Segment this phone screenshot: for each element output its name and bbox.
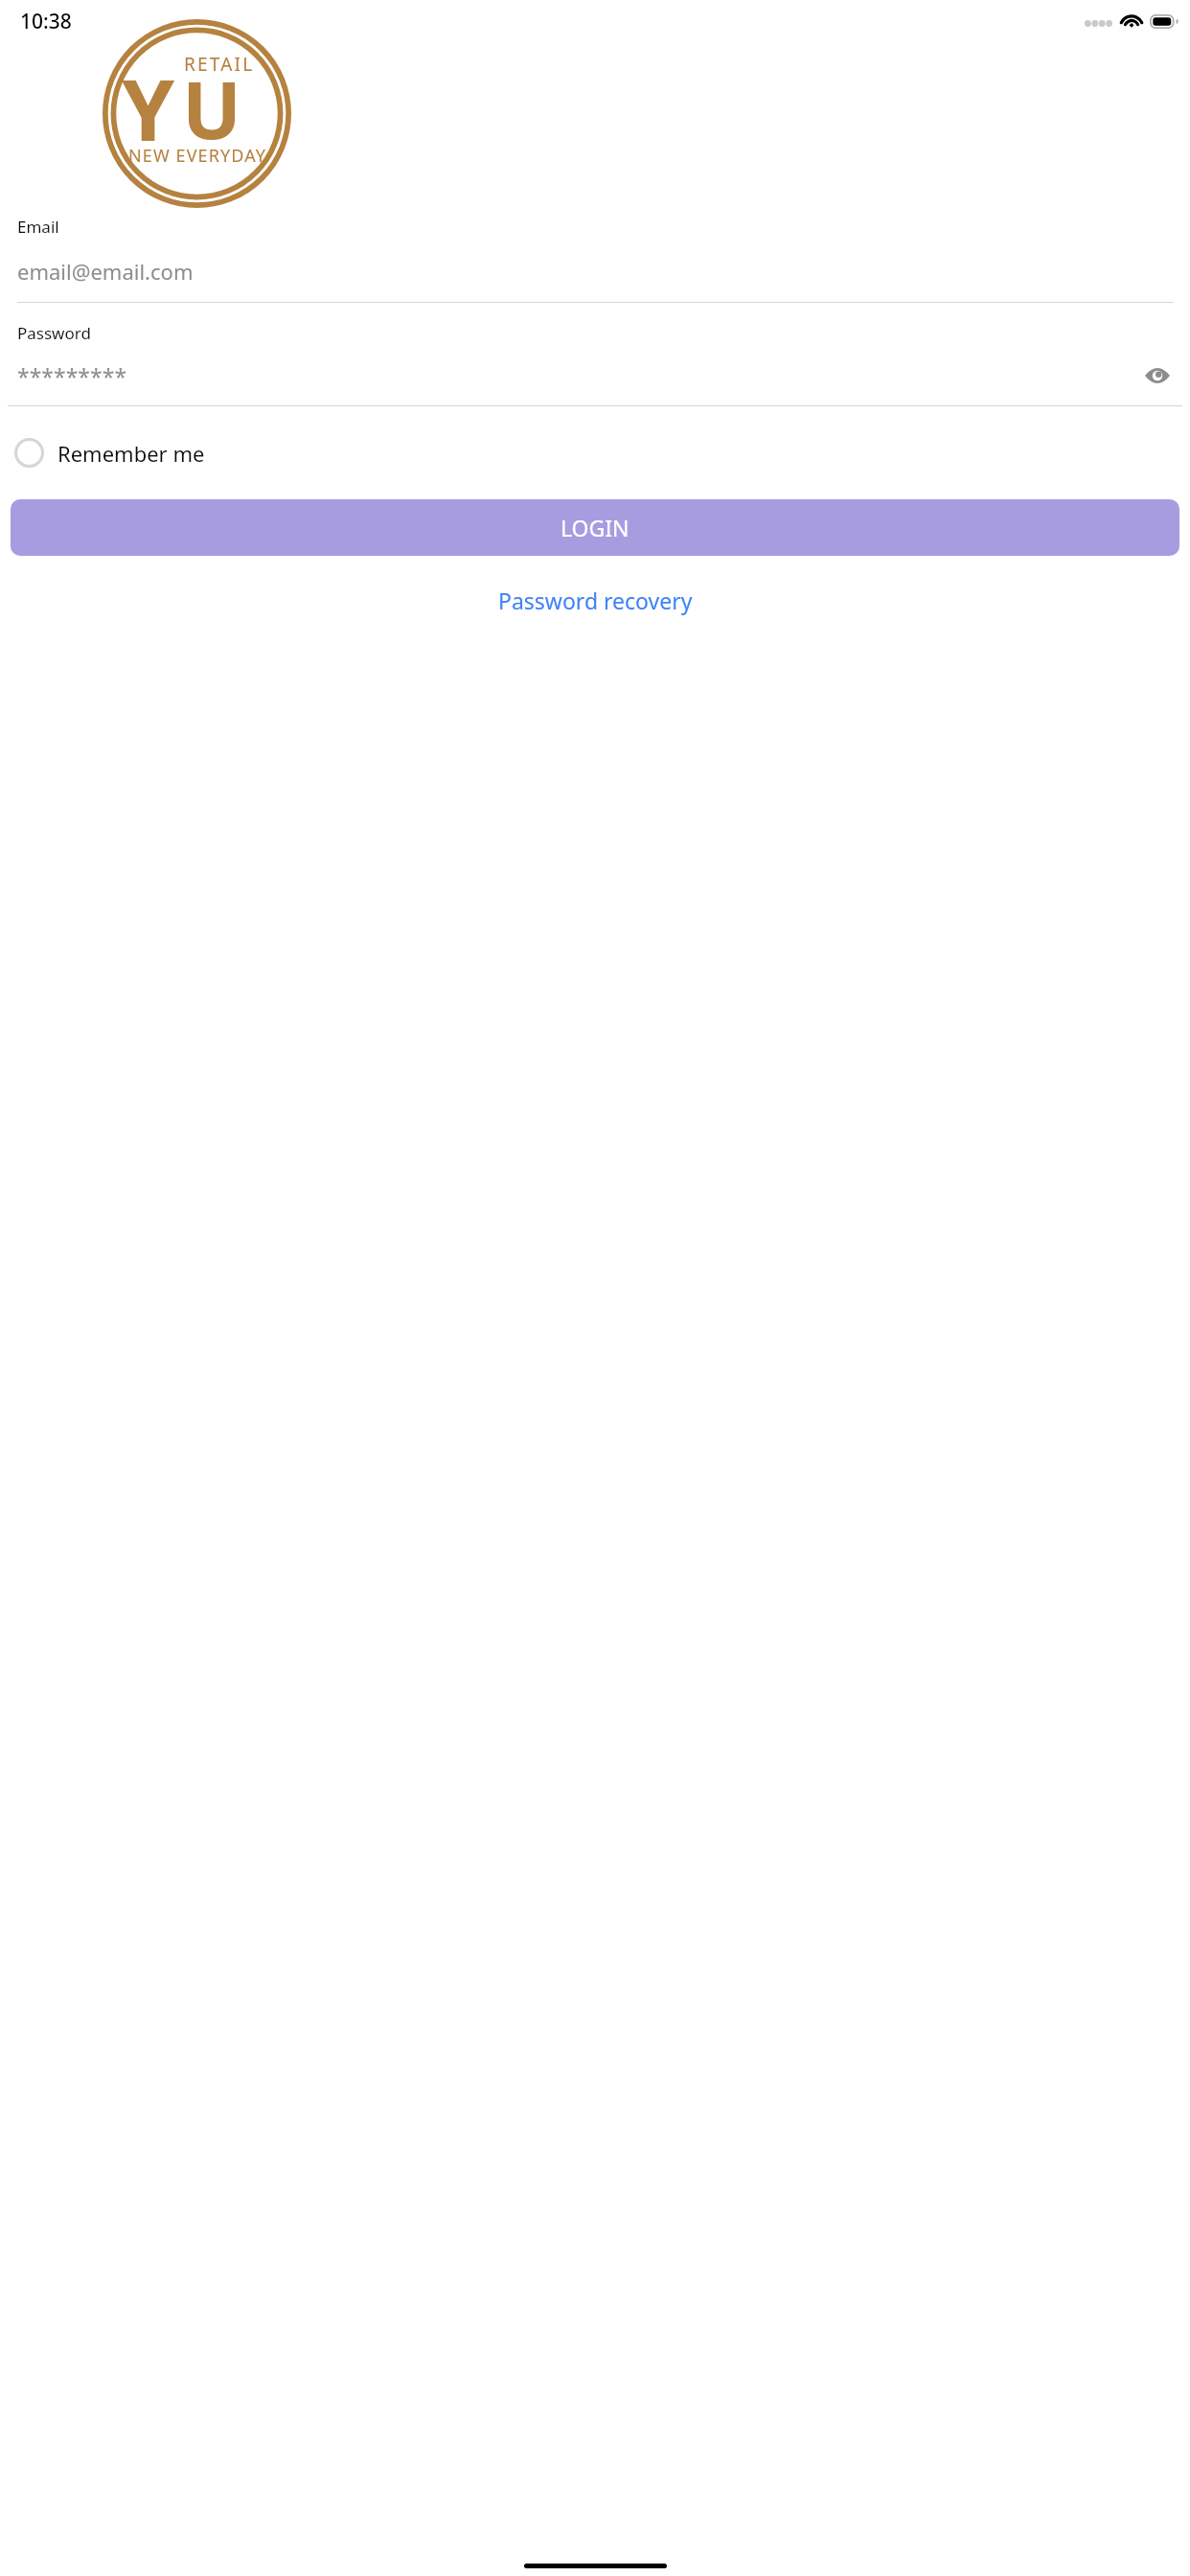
- staticText: RETAIL: [184, 52, 255, 77]
- button[interactable]: Remember me: [11, 434, 209, 471]
- staticText: Password: [17, 322, 91, 344]
- staticText: Password recovery: [498, 586, 693, 615]
- staticText: LOGIN: [561, 513, 629, 542]
- staticText: Remember me: [57, 439, 205, 468]
- staticText: *********: [17, 361, 127, 391]
- staticText: Email: [17, 216, 59, 238]
- button[interactable]: *********: [17, 361, 1140, 391]
- staticText: 10:38: [20, 8, 72, 35]
- staticText: email@email.com: [17, 257, 194, 286]
- staticText: U: [182, 55, 241, 162]
- staticText: Y: [122, 51, 175, 166]
- button[interactable]: Password recovery: [485, 580, 706, 621]
- staticText: NEW EVERYDAY: [128, 144, 266, 168]
- button[interactable]: Show password: [1140, 358, 1175, 393]
- button[interactable]: email@email.com: [0, 255, 1190, 287]
- button[interactable]: LOGIN: [11, 499, 1179, 556]
